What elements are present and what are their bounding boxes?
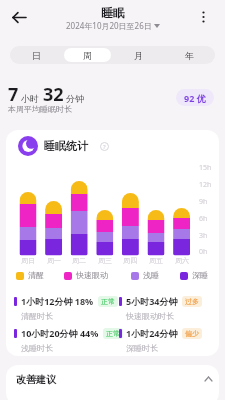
staticText: 周一	[47, 256, 61, 265]
staticText: ?	[103, 143, 106, 151]
staticText: 深睡	[192, 270, 208, 280]
staticText: 6h	[199, 214, 208, 224]
staticText: 12h	[199, 180, 212, 190]
button[interactable]: 年	[166, 48, 213, 62]
staticText: 过多	[185, 297, 199, 306]
staticText: 5小时34分钟	[126, 295, 178, 307]
staticText: 正常	[101, 297, 115, 306]
staticText: 日	[32, 50, 41, 61]
staticText: 1小时12分钟 18%	[21, 295, 94, 307]
staticText: 分钟	[66, 93, 84, 104]
staticText: 周	[83, 50, 92, 61]
staticText: 快速眼动	[76, 270, 108, 280]
button[interactable]: 92 优	[176, 89, 214, 106]
staticText: 1小时24分钟	[126, 327, 178, 339]
staticText: 改善建议	[16, 373, 56, 386]
button[interactable]: 改善建议	[6, 365, 219, 400]
staticText: 周二	[72, 256, 86, 265]
staticText: 本周平均睡眠时长	[8, 104, 72, 114]
staticText: 3h	[199, 231, 208, 241]
staticText: 周日	[21, 256, 35, 265]
staticText: 正常	[106, 329, 120, 338]
staticText: 睡眠	[101, 5, 125, 20]
staticText: 15h	[199, 163, 212, 173]
staticText: 小时	[21, 93, 39, 104]
staticText: 深睡时长	[126, 343, 158, 353]
button[interactable]: 月	[115, 48, 162, 62]
staticText: 7	[8, 82, 19, 107]
staticText: 9h	[199, 197, 208, 207]
button[interactable]: 日	[12, 48, 60, 62]
button[interactable]	[9, 7, 29, 27]
staticText: 周四	[123, 256, 137, 265]
staticText: 浅睡	[143, 270, 159, 280]
button[interactable]	[192, 6, 214, 28]
staticText: 周三	[98, 256, 112, 265]
staticText: 10小时20分钟 44%	[21, 327, 99, 339]
staticText: 月	[134, 50, 143, 61]
button[interactable]: 周	[64, 48, 111, 62]
staticText: 年	[185, 50, 194, 61]
staticText: 2024年10月20日至26日	[66, 20, 152, 31]
staticText: 0h	[199, 247, 208, 257]
staticText: 92 优	[184, 92, 206, 104]
staticText: 32	[43, 82, 64, 107]
staticText: 周六	[175, 256, 189, 265]
staticText: 周五	[149, 256, 163, 265]
staticText: 快速眼动时长	[126, 311, 174, 321]
staticText: 清醒时长	[21, 311, 53, 321]
staticText: 浅睡时长	[21, 343, 53, 353]
staticText: 清醒	[28, 270, 44, 280]
button[interactable]: ?	[99, 141, 110, 152]
staticText: 偏少	[185, 329, 199, 338]
staticText: 睡眠统计	[44, 139, 88, 153]
